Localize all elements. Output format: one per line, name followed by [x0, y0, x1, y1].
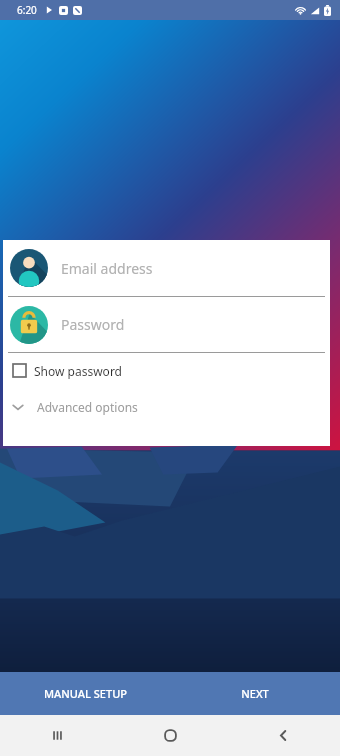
- button[interactable]: Back: [227, 715, 340, 756]
- staticText: NEXT: [241, 686, 269, 701]
- button[interactable]: NEXT: [170, 672, 340, 715]
- button[interactable]: Home: [114, 715, 227, 756]
- button[interactable]: Password: [3, 297, 330, 352]
- staticText: Advanced options: [37, 399, 138, 415]
- staticText: 6:20: [17, 3, 37, 17]
- button[interactable]: Advanced options: [3, 388, 330, 425]
- button[interactable]: MANUAL SETUP: [0, 672, 170, 715]
- button[interactable]: Show password: [3, 353, 330, 388]
- staticText: Password: [61, 315, 125, 334]
- button[interactable]: Email address: [3, 240, 330, 296]
- staticText: MANUAL SETUP: [44, 686, 127, 701]
- staticText: Email address: [61, 259, 153, 278]
- button[interactable]: Recent apps: [0, 715, 114, 756]
- staticText: Show password: [34, 363, 122, 379]
